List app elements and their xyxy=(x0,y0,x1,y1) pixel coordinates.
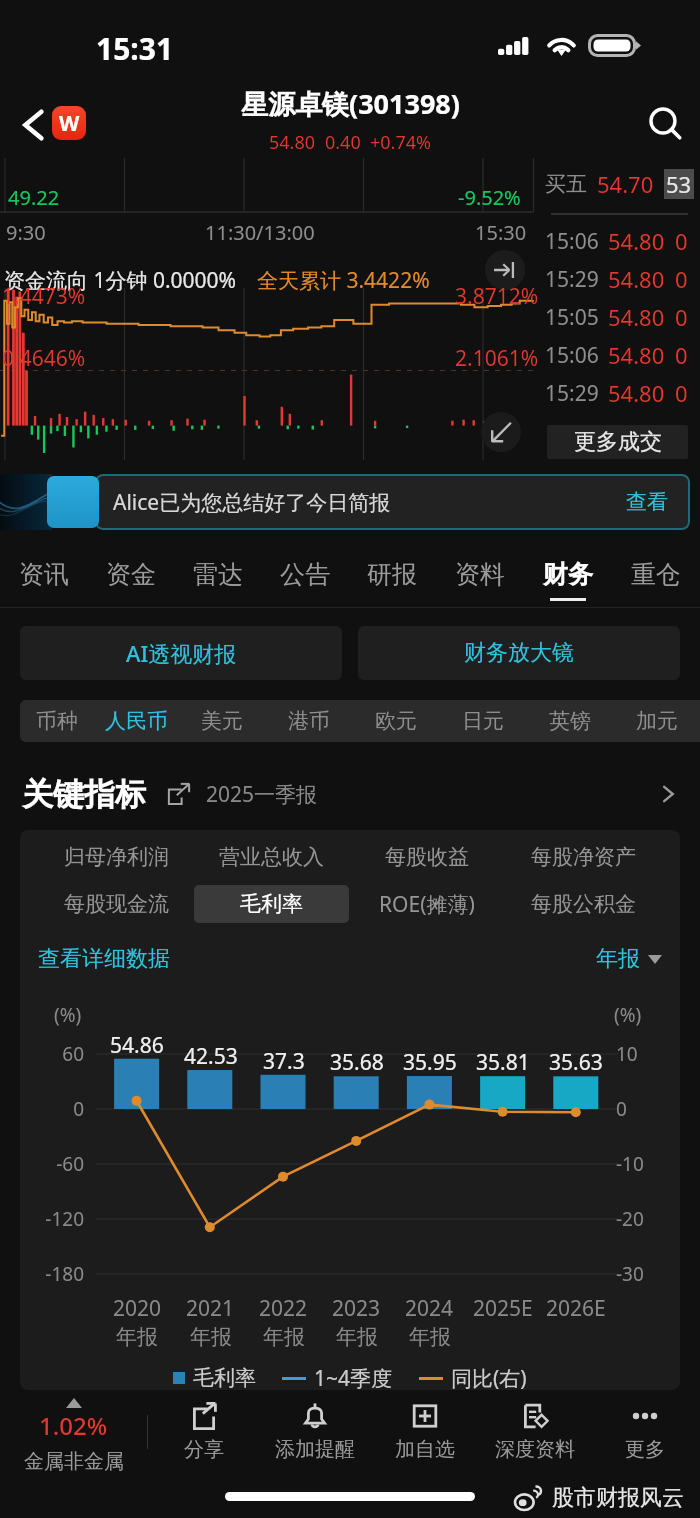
staticText: 资讯 xyxy=(19,559,69,590)
staticText: 0.4646% xyxy=(2,344,86,373)
staticText: 54.80 xyxy=(608,378,665,408)
button[interactable]: 港币 xyxy=(265,700,352,742)
button[interactable]: 每股净资产 xyxy=(505,832,661,882)
button[interactable]: 人民币 xyxy=(93,700,179,742)
staticText: 35.68 xyxy=(330,1048,384,1077)
staticText: -30 xyxy=(616,1261,676,1287)
button[interactable]: 1.02% xyxy=(0,1393,147,1471)
staticText: 54.80 xyxy=(608,340,665,370)
button[interactable]: 财务放大镜 xyxy=(358,626,680,680)
button[interactable]: 币种 xyxy=(20,700,93,742)
staticText: 币种 xyxy=(36,708,78,734)
staticText: 42.53 xyxy=(184,1042,238,1071)
staticText: 财务 xyxy=(543,559,593,590)
button[interactable]: 加自选 xyxy=(370,1393,480,1471)
staticText: 欧元 xyxy=(375,708,417,734)
button[interactable]: 资讯 xyxy=(0,540,87,608)
staticText: 加自选 xyxy=(395,1437,455,1462)
staticText: 2025一季报 xyxy=(206,780,318,809)
button[interactable]: 公告 xyxy=(261,540,348,608)
staticText: 1~4季度 xyxy=(314,1364,393,1390)
button[interactable]: 加元 xyxy=(613,700,700,742)
staticText: 9:30 xyxy=(6,219,46,246)
staticText: 35.81 xyxy=(476,1048,530,1077)
button[interactable]: 资料 xyxy=(436,540,524,608)
staticText: 年报 xyxy=(190,1324,232,1350)
button[interactable]: 归母净利润 xyxy=(39,832,194,882)
staticText: 资金流向 1分钟 0.0000% xyxy=(4,266,237,295)
button[interactable]: Alice已为您总结好了今日简报 xyxy=(0,474,700,530)
button[interactable]: Search xyxy=(640,98,690,148)
button[interactable]: 日元 xyxy=(439,700,526,742)
staticText: 更多成交 xyxy=(574,428,662,456)
staticText: Alice已为您总结好了今日简报 xyxy=(113,488,391,517)
button[interactable]: 研报 xyxy=(348,540,436,608)
button[interactable]: 英镑 xyxy=(526,700,613,742)
button[interactable]: 重仓 xyxy=(612,540,700,608)
button[interactable]: AI透视财报 xyxy=(20,626,342,680)
button[interactable]: Expand xyxy=(485,250,525,290)
button[interactable]: 更多成交 xyxy=(547,425,688,459)
staticText: 15:29 xyxy=(545,265,599,294)
button[interactable]: 添加提醒 xyxy=(259,1393,370,1471)
staticText: 35.95 xyxy=(403,1048,457,1077)
button[interactable]: Back xyxy=(10,100,56,150)
button[interactable]: 毛利率 xyxy=(194,885,349,923)
button[interactable]: 每股现金流 xyxy=(39,885,194,923)
staticText: 49.22 xyxy=(8,184,60,211)
staticText: 3.8712% xyxy=(455,282,539,311)
staticText: -20 xyxy=(616,1206,676,1232)
staticText: 港币 xyxy=(288,708,330,734)
staticText: 0 xyxy=(675,302,688,332)
button[interactable]: Fullscreen xyxy=(481,412,521,452)
button[interactable]: 雷达 xyxy=(174,540,261,608)
staticText: 54.80 xyxy=(608,226,665,256)
button[interactable]: 深度资料 xyxy=(480,1393,590,1471)
staticText: 每股公积金 xyxy=(531,891,636,917)
staticText: 年报 xyxy=(263,1324,305,1350)
staticText: 0 xyxy=(675,264,688,294)
staticText: 同比(右) xyxy=(451,1364,527,1390)
staticText: 深度资料 xyxy=(495,1437,575,1462)
staticText: 2023 xyxy=(332,1294,381,1323)
button[interactable]: 每股收益 xyxy=(349,832,505,882)
staticText: 重仓 xyxy=(631,559,681,590)
staticText: 15:31 xyxy=(96,28,174,69)
staticText: (%) xyxy=(54,1002,82,1028)
staticText: 研报 xyxy=(367,559,417,590)
staticText: 35.63 xyxy=(549,1048,603,1077)
button[interactable]: 美元 xyxy=(179,700,265,742)
button[interactable]: 欧元 xyxy=(352,700,439,742)
button[interactable]: 营业总收入 xyxy=(194,832,349,882)
staticText: 关键指标 xyxy=(22,775,146,814)
staticText: 每股现金流 xyxy=(64,891,169,917)
staticText: 英镑 xyxy=(549,708,591,734)
button[interactable]: 年报 xyxy=(596,945,662,973)
staticText: 加元 xyxy=(636,708,678,734)
staticText: 15:06 xyxy=(545,341,599,370)
staticText: 11:30/13:00 xyxy=(205,219,315,246)
other: Open xyxy=(168,783,190,805)
button[interactable]: 资金 xyxy=(87,540,174,608)
staticText: 2025E xyxy=(473,1294,533,1323)
button[interactable]: 关键指标 xyxy=(22,758,680,830)
other: More xyxy=(656,782,680,806)
staticText: 15:30 xyxy=(475,219,527,246)
staticText: 添加提醒 xyxy=(275,1437,355,1462)
staticText: 54.80 xyxy=(269,130,316,155)
staticText: 归母净利润 xyxy=(64,844,169,870)
button[interactable]: 分享 xyxy=(148,1393,259,1471)
button[interactable]: 更多 xyxy=(590,1393,700,1471)
staticText: 日元 xyxy=(462,708,504,734)
button[interactable]: 查看详细数据 xyxy=(38,945,170,973)
button[interactable]: Weibo xyxy=(52,106,86,140)
staticText: -60 xyxy=(24,1151,84,1177)
staticText: 2026E xyxy=(546,1294,606,1323)
staticText: (%) xyxy=(614,1002,642,1028)
button[interactable]: 每股公积金 xyxy=(505,885,661,923)
staticText: -9.52% xyxy=(458,184,521,211)
button[interactable]: ROE(摊薄) xyxy=(349,885,505,923)
button[interactable]: 财务 xyxy=(524,540,612,608)
staticText: 金属非金属 xyxy=(24,1449,124,1471)
staticText: 0 xyxy=(675,340,688,370)
